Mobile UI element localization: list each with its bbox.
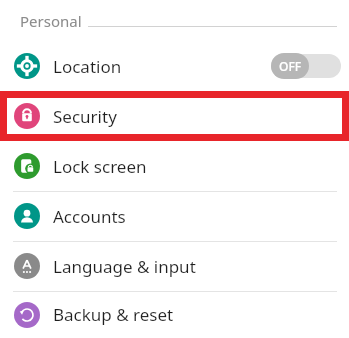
staticText: OFF bbox=[279, 58, 302, 74]
button[interactable]: Language & input bbox=[0, 241, 349, 291]
staticText: Accounts bbox=[53, 205, 126, 228]
staticText: Backup & reset bbox=[53, 303, 174, 326]
staticText: Security bbox=[53, 105, 117, 128]
button[interactable]: Backup & reset bbox=[0, 291, 349, 338]
staticText: Language & input bbox=[53, 255, 196, 278]
button[interactable]: Lock screen bbox=[0, 141, 349, 191]
button[interactable]: Location bbox=[0, 41, 349, 91]
staticText: Lock screen bbox=[53, 155, 147, 178]
staticText: Personal bbox=[20, 11, 82, 31]
staticText: Location bbox=[53, 55, 122, 78]
button[interactable]: Location off bbox=[271, 53, 341, 79]
button[interactable]: Accounts bbox=[0, 191, 349, 241]
button[interactable]: Security bbox=[0, 91, 349, 141]
